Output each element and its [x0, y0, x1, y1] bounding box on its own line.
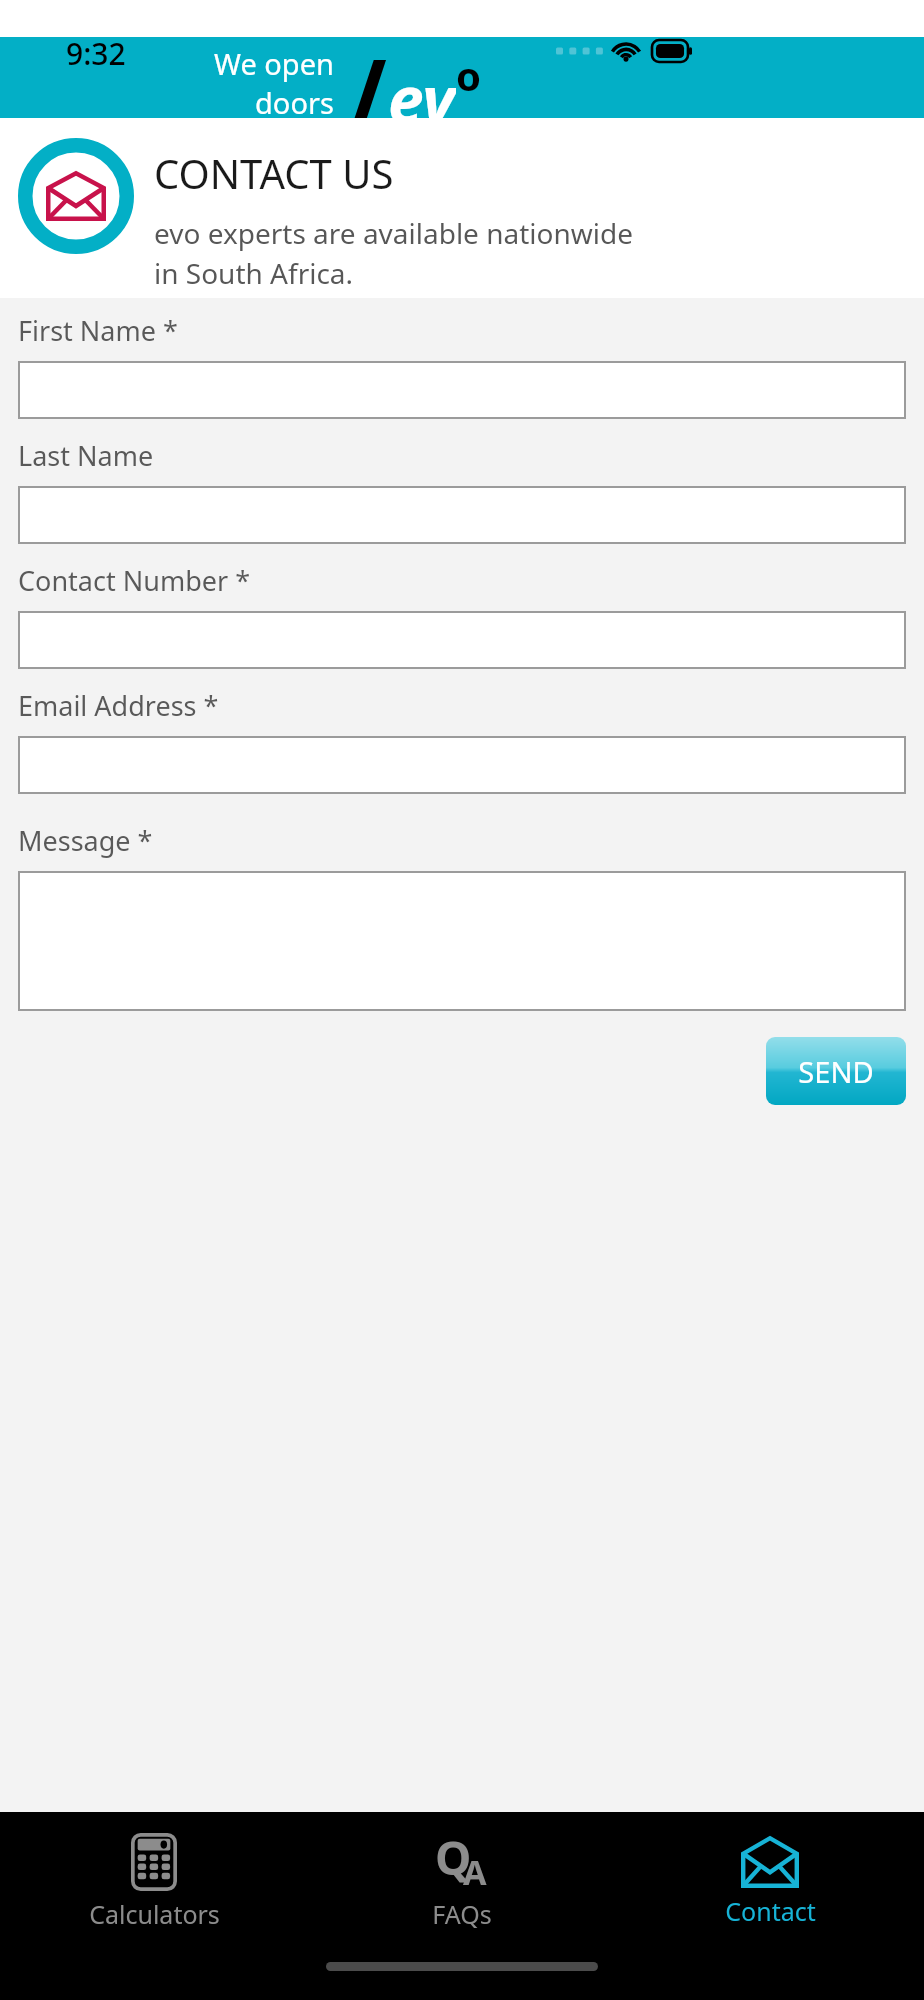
staticText: Message * [18, 822, 153, 859]
staticText: Q [435, 1826, 472, 1884]
button[interactable]: SEND [766, 1037, 906, 1105]
staticText: Contact [725, 1894, 816, 1928]
staticText: Contact Number * [18, 562, 251, 599]
staticText: Calculators [89, 1897, 220, 1931]
staticText: 9:32 [66, 33, 126, 74]
button[interactable] [18, 871, 906, 1011]
staticText: ev [388, 55, 456, 136]
staticText: Last Name [18, 437, 154, 474]
staticText: FAQs [432, 1897, 492, 1931]
other: FAQs [433, 1833, 491, 1891]
staticText: Email Address * [18, 687, 219, 724]
button[interactable] [18, 361, 906, 419]
button[interactable]: Calculators [0, 1825, 308, 1931]
button[interactable] [18, 486, 906, 544]
staticText: CONTACT US [154, 146, 394, 200]
button[interactable]: FAQs [308, 1825, 616, 1931]
button[interactable] [18, 611, 906, 669]
staticText: We open [214, 44, 334, 83]
staticText: o [456, 48, 481, 102]
other: Contact [741, 1836, 799, 1888]
staticText: evo experts are available nationwide in … [154, 214, 654, 293]
staticText: A [463, 1849, 487, 1895]
staticText: SEND [798, 1052, 874, 1091]
other: Calculators [131, 1833, 177, 1891]
staticText: doors [255, 83, 334, 122]
staticText: First Name * [18, 312, 178, 349]
button[interactable]: Contact [616, 1828, 924, 1928]
button[interactable] [18, 736, 906, 794]
